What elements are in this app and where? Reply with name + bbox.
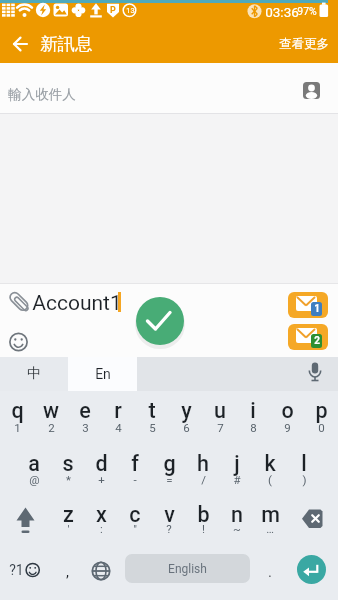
- staticText: m: [261, 502, 280, 527]
- button[interactable]: [2, 495, 48, 539]
- button[interactable]: .: [263, 562, 277, 582]
- staticText: 7: [217, 421, 224, 434]
- staticText: 4: [115, 421, 122, 434]
- button[interactable]: n: [220, 500, 254, 528]
- staticText: 2: [48, 421, 55, 434]
- staticText: -: [133, 473, 137, 486]
- button[interactable]: c: [118, 500, 152, 528]
- button[interactable]: b: [186, 500, 220, 528]
- button[interactable]: z: [51, 500, 85, 528]
- staticText: q: [11, 398, 24, 423]
- staticText: w: [43, 398, 59, 423]
- staticText: 3: [82, 421, 89, 434]
- staticText: 中: [27, 365, 41, 383]
- staticText: n: [231, 502, 243, 527]
- staticText: ~: [233, 522, 241, 535]
- staticText: .: [268, 563, 272, 581]
- button[interactable]: u: [203, 396, 237, 424]
- staticText: v: [164, 502, 175, 527]
- staticText: o: [281, 398, 294, 423]
- staticText: English: [168, 562, 207, 576]
- staticText: ,: [66, 563, 69, 581]
- button[interactable]: [297, 555, 326, 584]
- staticText: @: [29, 473, 40, 486]
- staticText: 1: [314, 303, 320, 315]
- button[interactable]: e: [68, 396, 102, 424]
- button[interactable]: q: [0, 396, 34, 424]
- button[interactable]: [136, 297, 184, 345]
- button[interactable]: [0, 357, 68, 391]
- button[interactable]: 查看更多: [209, 33, 329, 55]
- button[interactable]: k: [253, 449, 287, 477]
- button[interactable]: r: [101, 396, 135, 424]
- button[interactable]: x: [84, 500, 118, 528]
- staticText: z: [63, 502, 74, 527]
- staticText: x: [96, 502, 107, 527]
- staticText: 1: [14, 421, 21, 434]
- staticText: ): [302, 473, 307, 486]
- staticText: 新訊息: [40, 33, 93, 55]
- staticText: 5: [149, 421, 156, 434]
- staticText: l: [301, 451, 307, 476]
- staticText: g: [163, 451, 176, 476]
- staticText: *: [66, 473, 71, 486]
- staticText: 6: [183, 421, 190, 434]
- staticText: u: [214, 398, 226, 423]
- staticText: y: [181, 398, 192, 423]
- staticText: a: [28, 451, 40, 476]
- staticText: h: [197, 451, 209, 476]
- staticText: :: [100, 522, 103, 535]
- staticText: 輸入收件人: [8, 86, 76, 103]
- staticText: f: [131, 451, 139, 476]
- button[interactable]: y: [169, 396, 203, 424]
- button[interactable]: o: [270, 396, 304, 424]
- staticText: ': [67, 522, 70, 535]
- staticText: ?: [166, 522, 172, 535]
- staticText: c: [129, 502, 141, 527]
- button[interactable]: p: [304, 396, 338, 424]
- staticText: (: [268, 473, 272, 486]
- button[interactable]: l: [287, 449, 321, 477]
- button[interactable]: m: [253, 500, 287, 528]
- staticText: r: [114, 398, 122, 423]
- button[interactable]: t: [135, 396, 169, 424]
- button[interactable]: [125, 554, 250, 583]
- staticText: b: [197, 502, 210, 527]
- staticText: 9: [284, 421, 291, 434]
- button[interactable]: g: [152, 449, 186, 477]
- button[interactable]: v: [152, 500, 186, 528]
- button[interactable]: [300, 357, 332, 391]
- staticText: En: [95, 366, 111, 382]
- staticText: t: [148, 398, 156, 423]
- button[interactable]: w: [34, 396, 68, 424]
- staticText: k: [264, 451, 276, 476]
- staticText: p: [315, 398, 328, 423]
- button[interactable]: [288, 324, 328, 350]
- staticText: P: [110, 5, 116, 16]
- button[interactable]: [0, 548, 50, 594]
- button[interactable]: ,: [60, 562, 74, 582]
- button[interactable]: i: [236, 396, 270, 424]
- staticText: d: [95, 451, 108, 476]
- button[interactable]: [84, 548, 118, 594]
- staticText: 2: [314, 335, 320, 347]
- staticText: …: [266, 522, 274, 535]
- staticText: 03:36: [265, 4, 299, 20]
- button[interactable]: [0, 63, 338, 113]
- staticText: #: [233, 473, 241, 486]
- button[interactable]: h: [186, 449, 220, 477]
- button[interactable]: s: [51, 449, 85, 477]
- button[interactable]: j: [220, 449, 254, 477]
- staticText: 97%: [297, 5, 317, 17]
- button[interactable]: [288, 292, 328, 318]
- staticText: +: [98, 473, 105, 486]
- button[interactable]: [290, 495, 336, 539]
- button[interactable]: d: [84, 449, 118, 477]
- staticText: 8: [250, 421, 257, 434]
- staticText: 13: [126, 6, 135, 15]
- button[interactable]: a: [17, 449, 51, 477]
- staticText: !: [202, 522, 205, 535]
- button[interactable]: f: [118, 449, 152, 477]
- button[interactable]: [303, 82, 320, 99]
- button[interactable]: [68, 357, 137, 391]
